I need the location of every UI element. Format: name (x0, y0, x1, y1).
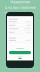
staticText: Управление (10, 0, 30, 4)
button[interactable] (7, 51, 33, 54)
staticText: для выставления счетов (4, 4, 35, 15)
button[interactable] (7, 58, 33, 59)
